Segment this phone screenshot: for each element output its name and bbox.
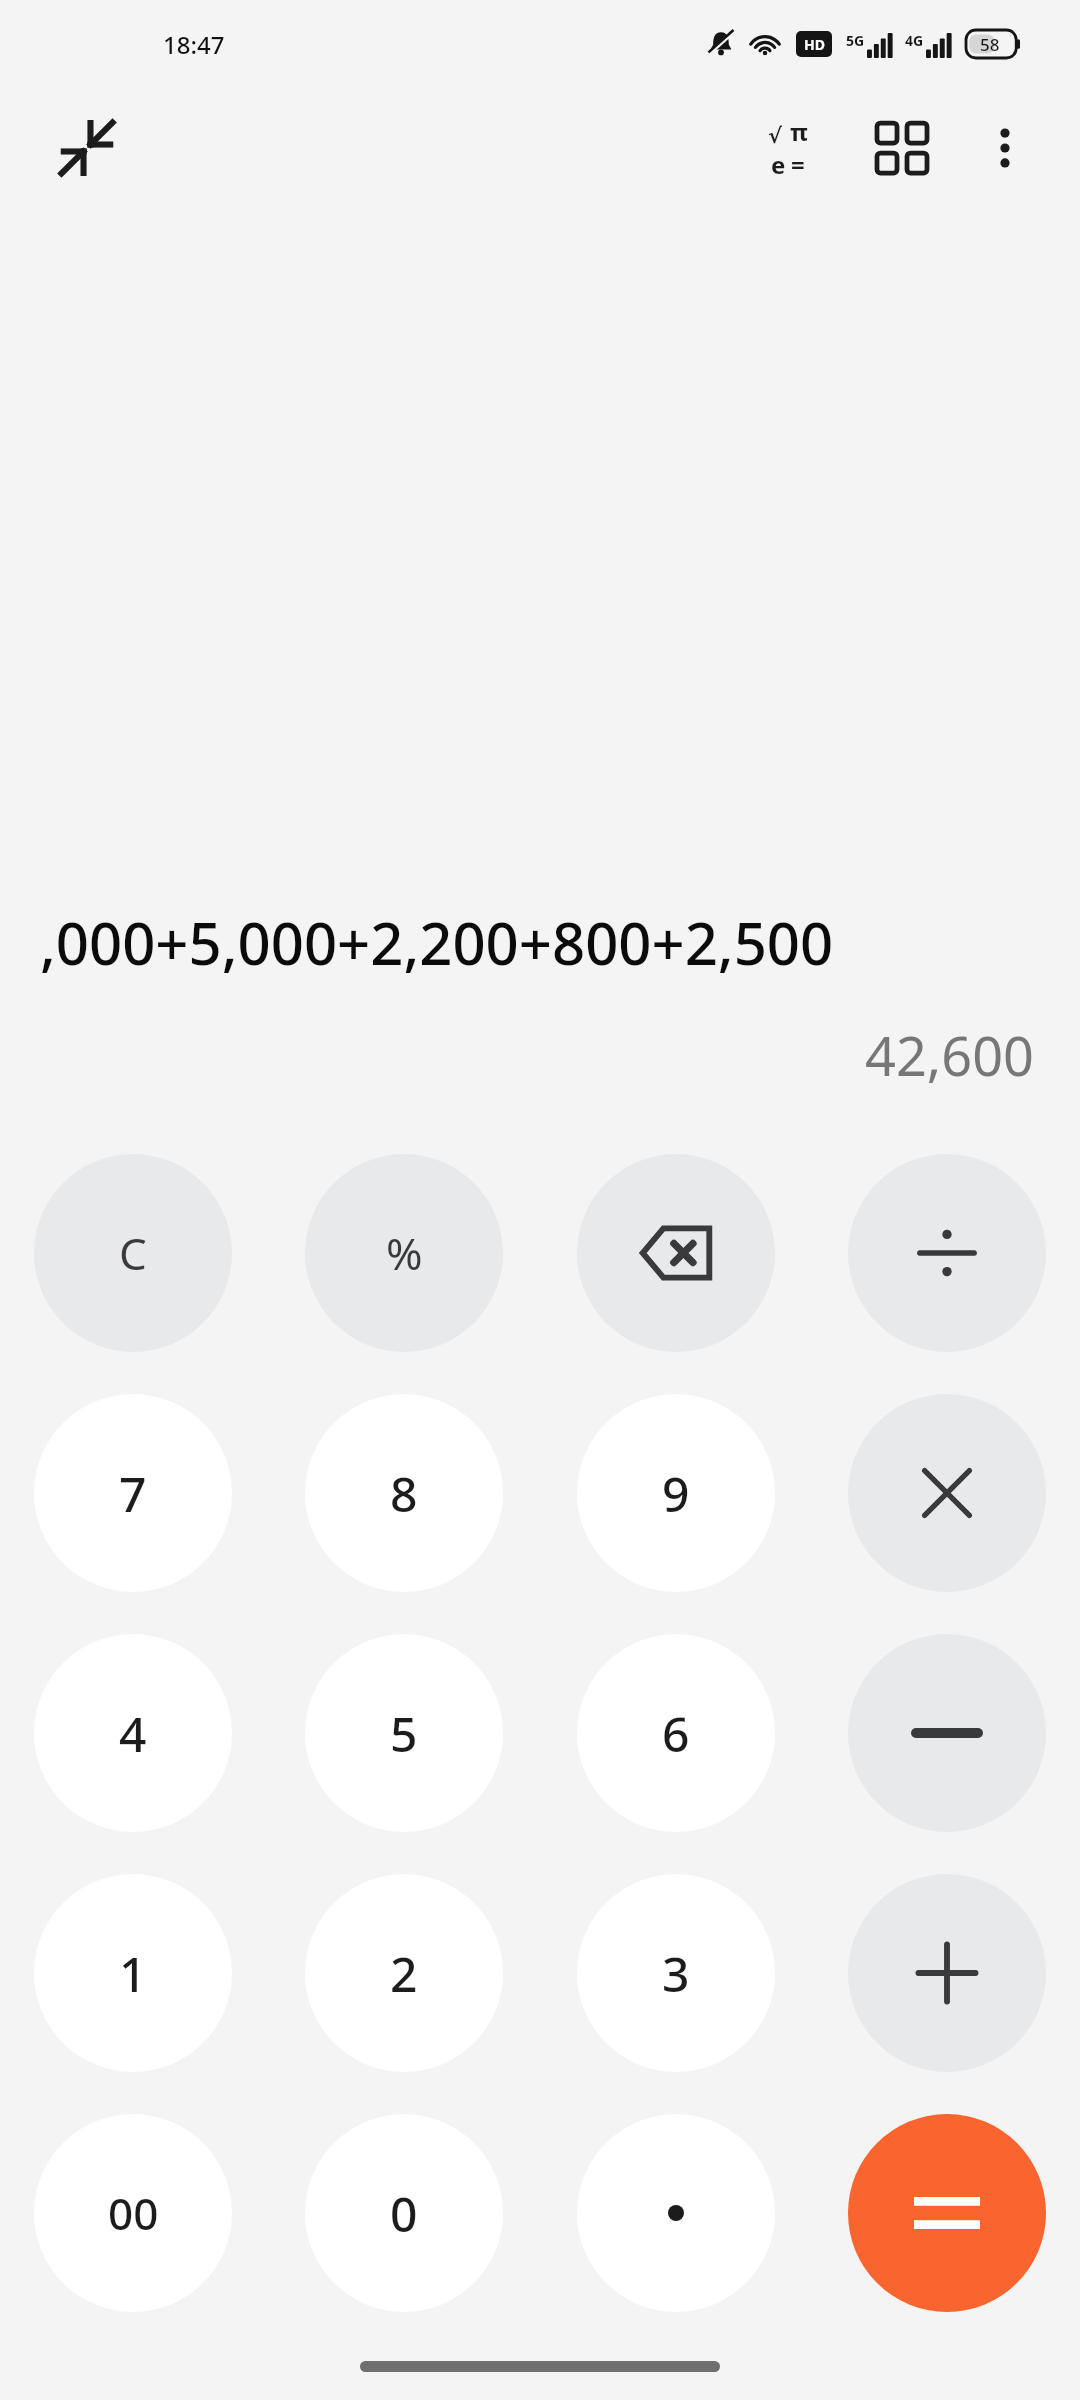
button[interactable]: Decimal point	[577, 2114, 775, 2312]
staticText: 6	[662, 1701, 690, 1766]
staticText: 00	[108, 2183, 159, 2243]
staticText: ,000+5,000+2,200+800+2,500	[40, 903, 1034, 982]
staticText: 0	[390, 2181, 418, 2246]
button[interactable]: 3	[577, 1874, 775, 2072]
button[interactable]: %	[305, 1154, 503, 1352]
button[interactable]: 4	[34, 1634, 232, 1832]
staticText: 4	[119, 1701, 147, 1766]
button[interactable]: More options	[966, 109, 1044, 187]
staticText: π	[790, 115, 808, 148]
button[interactable]: Divide	[848, 1154, 1046, 1352]
staticText: 1	[119, 1941, 147, 2006]
staticText: 5G	[846, 31, 865, 50]
staticText: 18:47	[163, 28, 225, 61]
button[interactable]: C	[34, 1154, 232, 1352]
button[interactable]: 9	[577, 1394, 775, 1592]
button[interactable]: Backspace	[577, 1154, 775, 1352]
staticText: C	[119, 1223, 147, 1283]
staticText: HD	[804, 35, 825, 54]
staticText: 2	[390, 1941, 418, 2006]
button[interactable]: Subtract	[848, 1634, 1046, 1832]
button[interactable]: 8	[305, 1394, 503, 1592]
staticText: 42,600	[0, 1018, 1034, 1092]
button[interactable]: Add	[848, 1874, 1046, 2072]
button[interactable]: Multiply	[848, 1394, 1046, 1592]
staticText: =	[791, 148, 805, 181]
staticText: 5	[390, 1701, 418, 1766]
button[interactable]: 0	[305, 2114, 503, 2312]
staticText: %	[386, 1223, 423, 1283]
staticText: 58	[980, 33, 1000, 56]
button[interactable]: 2	[305, 1874, 503, 2072]
button[interactable]: 7	[34, 1394, 232, 1592]
staticText: 7	[119, 1461, 147, 1526]
button[interactable]: 6	[577, 1634, 775, 1832]
button[interactable]: Scientific	[746, 106, 830, 190]
button[interactable]: Equals	[848, 2114, 1046, 2312]
staticText: 9	[662, 1461, 690, 1526]
staticText: 4G	[905, 31, 924, 50]
staticText: e	[771, 148, 786, 181]
button[interactable]: 00	[34, 2114, 232, 2312]
staticText: √	[768, 124, 783, 148]
button[interactable]: 5	[305, 1634, 503, 1832]
staticText: 3	[662, 1941, 690, 2006]
staticText: 8	[390, 1461, 418, 1526]
button[interactable]: Converters	[860, 106, 944, 190]
button[interactable]: 1	[34, 1874, 232, 2072]
button[interactable]: Collapse	[48, 109, 126, 187]
